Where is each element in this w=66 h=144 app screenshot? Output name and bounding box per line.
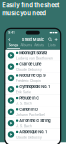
staticText: Clair de Lune [19, 62, 41, 67]
staticText: Albums [20, 43, 32, 47]
staticText: Johann Pachelbel [16, 113, 45, 117]
staticText: Canon in D [19, 107, 38, 112]
button[interactable]: Prelude in C [6, 95, 60, 106]
staticText: Easily find the sheet music you need [2, 1, 59, 17]
staticText: J. S. Bach [16, 101, 32, 106]
staticText: Claude Debussy [16, 135, 42, 139]
staticText: Songs [9, 43, 19, 47]
staticText: Arabesque No. 1 [19, 129, 47, 134]
staticText: Sheet Music [22, 37, 44, 42]
button[interactable]: Search [49, 38, 52, 41]
button[interactable]: Clair de Lune [6, 61, 60, 72]
button[interactable]: Air on the G String [6, 118, 60, 129]
button[interactable]: Lists [46, 43, 58, 49]
button[interactable]: Back [8, 38, 11, 41]
button[interactable]: Gymnopédie No. 1 [6, 84, 60, 95]
staticText: J. S. Bach [16, 124, 32, 128]
button[interactable]: Artists [33, 43, 46, 49]
staticText: Prelude in C [19, 95, 39, 100]
button[interactable]: Canon in D [6, 106, 60, 117]
staticText: Air on the G String [19, 118, 50, 123]
button[interactable]: Moonlight Sonata [6, 50, 60, 61]
button[interactable]: Nocturne Op. 9 [6, 72, 60, 83]
staticText: Frédéric Chopin [16, 79, 41, 83]
staticText: Nocturne Op. 9 [19, 73, 45, 78]
staticText: 9:41 [8, 31, 14, 35]
button[interactable]: Albums [20, 43, 33, 49]
staticText: Erik Satie [16, 90, 31, 94]
staticText: Artists [34, 43, 44, 47]
button[interactable]: Songs [7, 43, 20, 49]
staticText: Claude Debussy [16, 67, 42, 72]
staticText: Moonlight Sonata [19, 50, 47, 55]
button[interactable]: Add [52, 38, 58, 41]
button[interactable]: Arabesque No. 1 [6, 129, 60, 140]
staticText: Lists [48, 43, 56, 47]
staticText: Gymnopédie No. 1 [19, 84, 50, 89]
staticText: Ludwig van Beethoven [16, 56, 53, 60]
